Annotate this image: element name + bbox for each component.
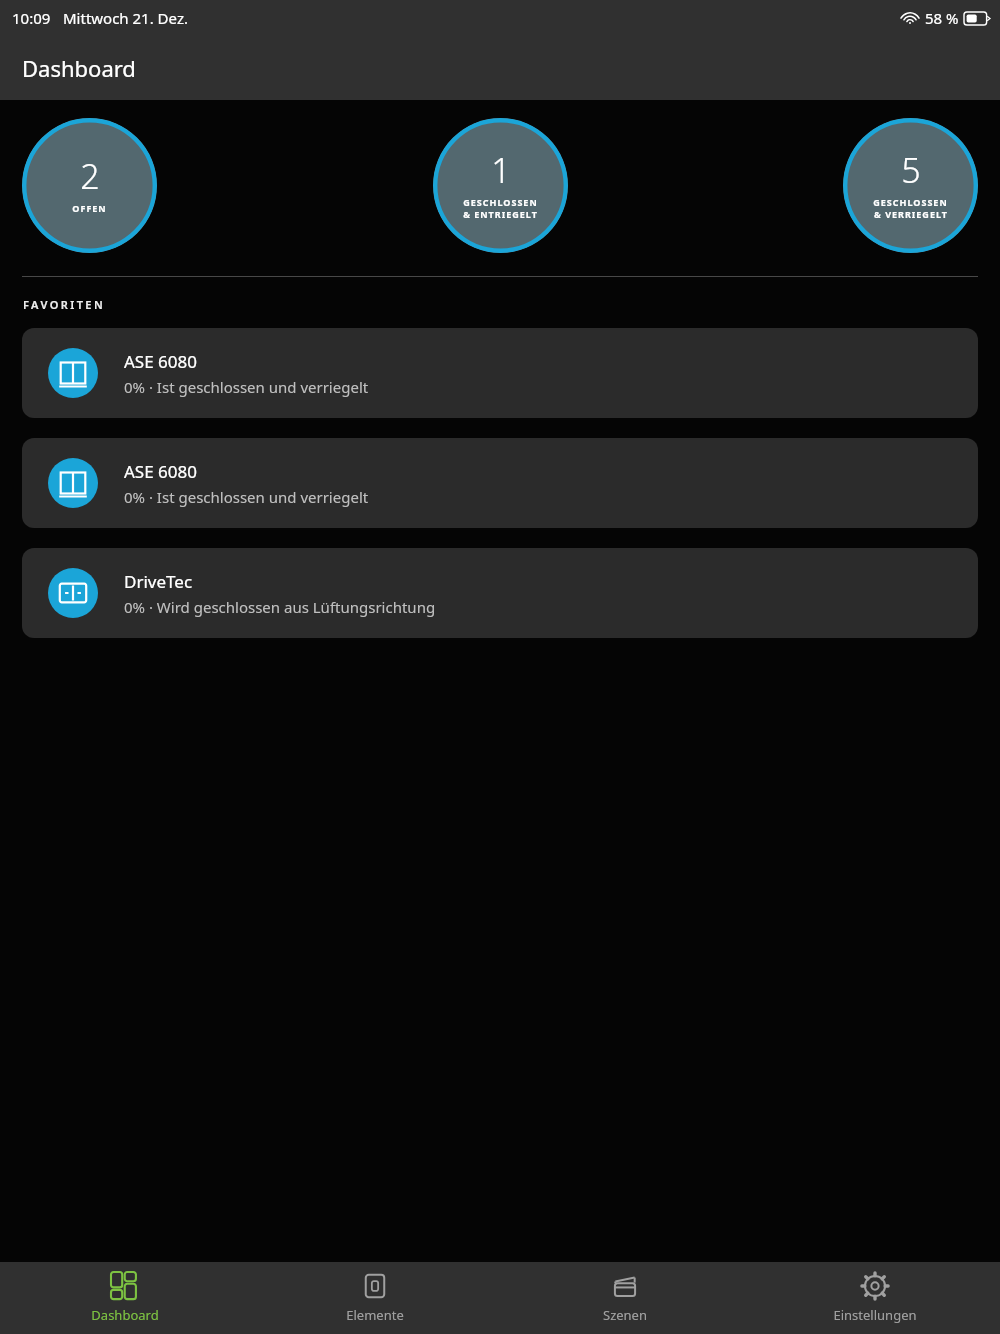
button[interactable]: Dashboard xyxy=(0,1262,250,1334)
staticText: 0% · Wird geschlossen aus Lüftungsrichtu… xyxy=(124,597,436,617)
staticText: ASE 6080 xyxy=(124,460,197,483)
staticText: Dashboard xyxy=(22,53,136,83)
button[interactable]: ASE 6080 xyxy=(22,438,978,528)
button[interactable]: ASE 6080 xyxy=(22,328,978,418)
staticText: & VERRIEGELT xyxy=(874,208,948,220)
staticText: FAVORITEN xyxy=(23,297,106,312)
staticText: & ENTRIEGELT xyxy=(463,208,538,220)
staticText: Mittwoch 21. Dez. xyxy=(63,8,188,28)
staticText: 10:09 xyxy=(12,8,51,28)
staticText: ASE 6080 xyxy=(124,350,197,373)
staticText: Elemente xyxy=(346,1306,404,1324)
button[interactable]: 1 GESCHLOSSEN & ENTRIEGELT xyxy=(433,118,568,253)
button[interactable]: 2 OFFEN xyxy=(22,118,157,253)
staticText: 0% · Ist geschlossen und verriegelt xyxy=(124,487,369,507)
staticText: Szenen xyxy=(603,1306,647,1324)
button[interactable]: Elemente xyxy=(250,1262,500,1334)
staticText: OFFEN xyxy=(72,202,107,214)
staticText: GESCHLOSSEN xyxy=(463,196,538,208)
button[interactable]: 5 GESCHLOSSEN & VERRIEGELT xyxy=(843,118,978,253)
staticText: 2 xyxy=(80,153,100,199)
staticText: Einstellungen xyxy=(833,1306,917,1324)
staticText: 0% · Ist geschlossen und verriegelt xyxy=(124,377,369,397)
staticText: 58 % xyxy=(925,8,959,28)
button[interactable]: Einstellungen xyxy=(750,1262,1000,1334)
staticText: DriveTec xyxy=(124,570,193,593)
staticText: 1 xyxy=(491,147,511,193)
staticText: GESCHLOSSEN xyxy=(873,196,948,208)
staticText: Dashboard xyxy=(91,1306,159,1324)
staticText: 5 xyxy=(901,147,921,193)
button[interactable]: DriveTec xyxy=(22,548,978,638)
button[interactable]: Szenen xyxy=(500,1262,750,1334)
